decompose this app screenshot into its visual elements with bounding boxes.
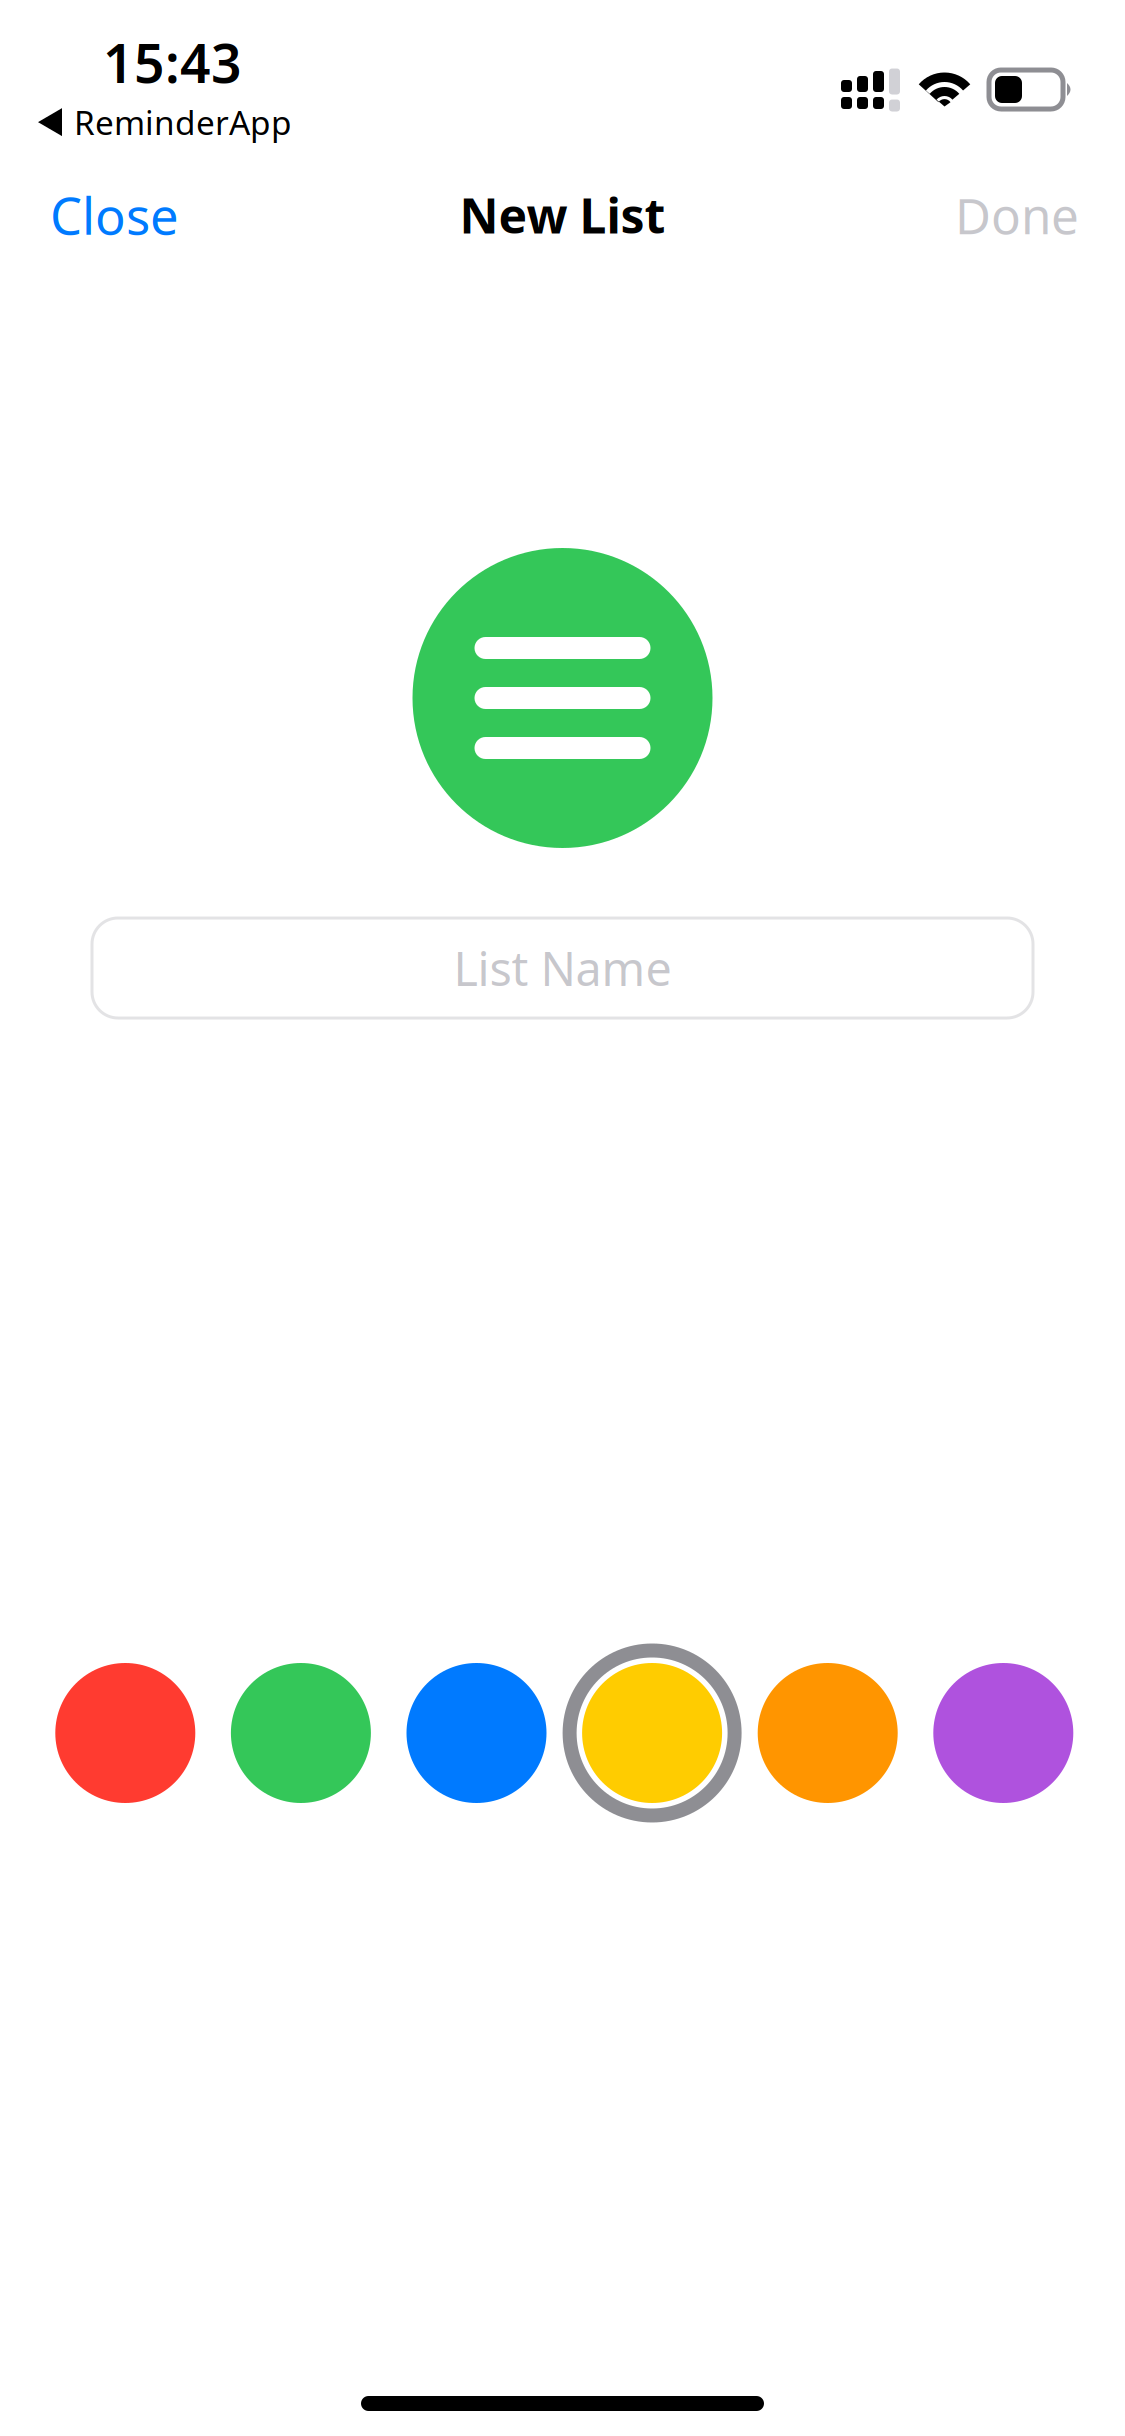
button[interactable]: Purple [915, 1643, 1091, 1823]
button[interactable]: Green [213, 1643, 389, 1823]
button[interactable]: Close [30, 167, 199, 263]
button[interactable]: Done [935, 168, 1095, 262]
button[interactable]: Blue [389, 1643, 564, 1823]
button[interactable]: Red [37, 1643, 213, 1823]
button[interactable]: List Name [0, 918, 1125, 1018]
staticText: Done [955, 182, 1079, 248]
staticText: Close [50, 181, 179, 249]
button[interactable]: Yellow [564, 1643, 740, 1823]
button[interactable]: Orange [740, 1643, 915, 1823]
staticText: List Name [453, 937, 671, 999]
staticText: ReminderApp [74, 100, 292, 144]
staticText: 15:43 [103, 27, 242, 98]
button[interactable]: Back to ReminderApp [38, 100, 292, 144]
staticText: New List [459, 183, 665, 247]
